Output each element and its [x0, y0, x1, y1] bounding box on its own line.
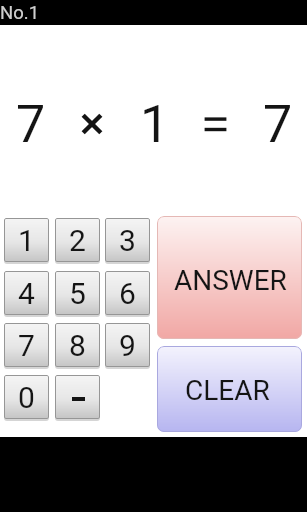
button[interactable]: ANSWER: [157, 216, 302, 339]
button[interactable]: 6: [105, 271, 150, 315]
staticText: 0: [18, 380, 35, 415]
staticText: 7: [18, 328, 35, 363]
button[interactable]: CLEAR: [157, 346, 302, 432]
button[interactable]: 5: [55, 271, 100, 315]
staticText: 8: [69, 328, 86, 363]
button[interactable]: 9: [105, 323, 150, 367]
button[interactable]: 8: [55, 323, 100, 367]
staticText: 5: [69, 276, 86, 311]
button[interactable]: 1: [4, 218, 49, 262]
staticText: 7: [263, 94, 293, 155]
button[interactable]: 2: [55, 218, 100, 262]
button[interactable]: 0: [4, 375, 49, 419]
staticText: 9: [119, 328, 136, 363]
staticText: 1: [18, 223, 35, 258]
button[interactable]: [55, 375, 100, 419]
staticText: 1: [140, 94, 170, 155]
staticText: ANSWER: [174, 264, 287, 297]
staticText: 3: [119, 223, 136, 258]
button[interactable]: 7: [4, 323, 49, 367]
staticText: CLEAR: [185, 374, 270, 407]
button[interactable]: 3: [105, 218, 150, 262]
staticText: 2: [69, 223, 86, 258]
staticText: No.1: [0, 2, 40, 24]
staticText: 4: [18, 276, 35, 311]
staticText: 6: [119, 276, 136, 311]
staticText: 7: [16, 94, 46, 155]
button[interactable]: 4: [4, 271, 49, 315]
